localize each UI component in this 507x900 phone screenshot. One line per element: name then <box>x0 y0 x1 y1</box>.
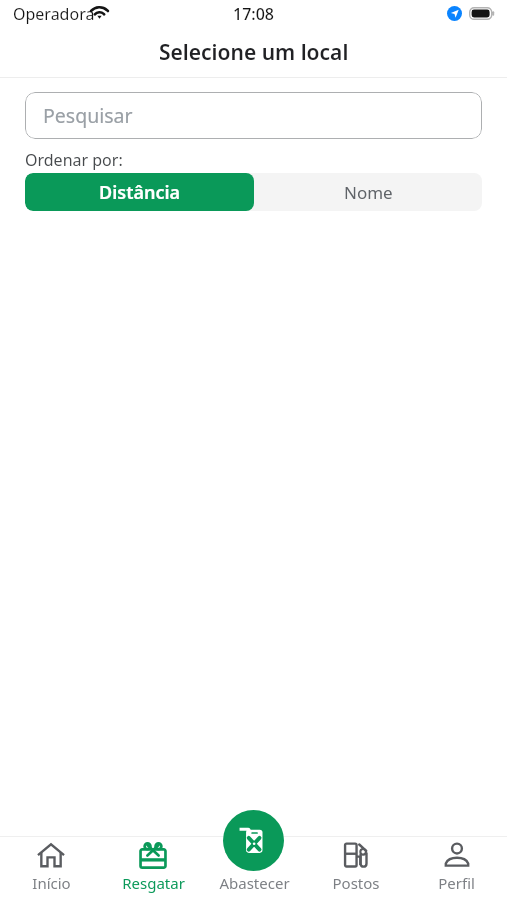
staticText: Resgatar <box>122 873 185 893</box>
staticText: Perfil <box>438 873 475 893</box>
staticText: Pesquisar <box>43 102 133 129</box>
staticText: Ordenar por: <box>25 149 123 171</box>
staticText: Operadora <box>13 3 95 25</box>
button[interactable]: Postos <box>305 836 406 900</box>
staticText: Nome <box>344 181 393 204</box>
staticText: Início <box>32 873 71 893</box>
other: Wi-Fi <box>89 5 110 19</box>
button[interactable]: Pesquisar <box>25 92 482 139</box>
staticText: Distância <box>99 180 181 205</box>
staticText: Postos <box>332 873 380 893</box>
staticText: 17:08 <box>233 3 274 25</box>
button[interactable]: Abastecer <box>204 836 305 900</box>
button[interactable]: Início <box>0 836 102 900</box>
other: Battery <box>469 7 495 20</box>
staticText: Abastecer <box>219 873 290 893</box>
button[interactable]: Perfil <box>406 836 507 900</box>
button[interactable]: Distância <box>25 173 254 211</box>
staticText: Selecione um local <box>159 38 349 67</box>
button[interactable]: Abastecer <box>223 810 284 871</box>
other: Location <box>447 6 462 21</box>
button[interactable]: Nome <box>254 173 482 211</box>
button[interactable]: Resgatar <box>102 836 204 900</box>
